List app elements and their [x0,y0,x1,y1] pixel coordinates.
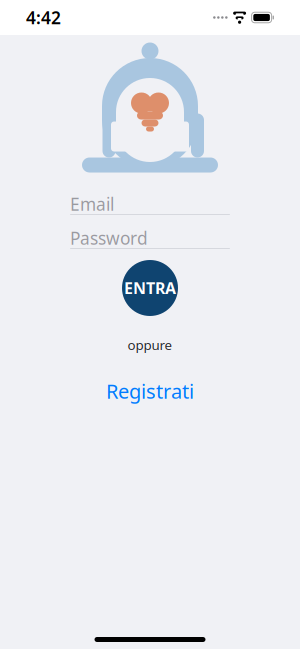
button[interactable]: Registrati [96,374,204,408]
staticText: 4:42 [26,6,61,29]
staticText: oppure [127,336,172,354]
staticText: Email [70,192,114,215]
staticText: Registrati [106,378,194,404]
staticText: Password [70,226,148,249]
staticText: ENTRA [124,277,176,299]
button[interactable]: ENTRA [122,260,178,316]
